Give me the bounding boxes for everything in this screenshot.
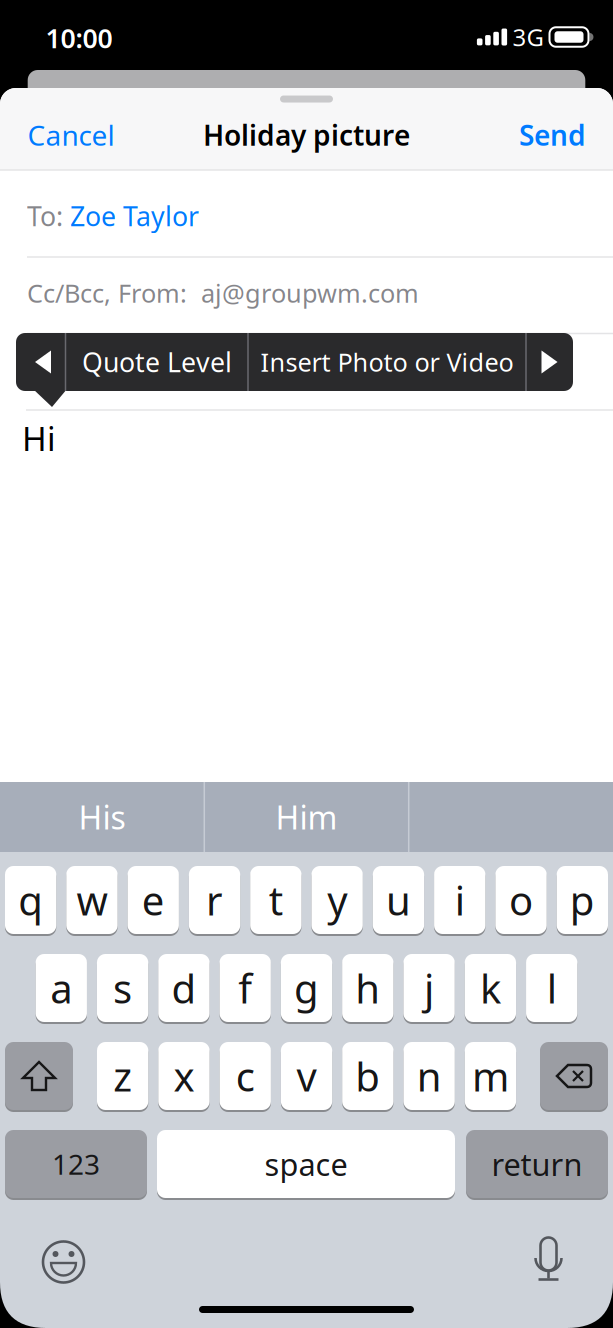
staticText: j bbox=[424, 961, 434, 1014]
staticText: r bbox=[206, 873, 223, 926]
button[interactable]: More menu items bbox=[541, 350, 557, 373]
staticText: t bbox=[269, 873, 283, 926]
button[interactable]: Insert Photo or Video bbox=[248, 333, 526, 391]
staticText: q bbox=[18, 873, 43, 926]
button[interactable]: To: bbox=[0, 173, 613, 259]
staticText: 3G bbox=[512, 21, 543, 53]
button[interactable]: Shift bbox=[5, 1041, 73, 1111]
button[interactable]: i bbox=[434, 865, 485, 935]
button[interactable]: space bbox=[157, 1129, 455, 1199]
staticText: i bbox=[455, 873, 465, 926]
staticText: His bbox=[78, 796, 125, 838]
button[interactable]: His bbox=[2, 782, 202, 852]
staticText: p bbox=[570, 873, 595, 926]
staticText: Quote Level bbox=[82, 344, 232, 380]
staticText: To: bbox=[27, 198, 63, 234]
staticText: o bbox=[509, 873, 533, 926]
staticText: space bbox=[264, 1144, 347, 1184]
staticText: k bbox=[480, 961, 501, 1014]
staticText: e bbox=[142, 873, 165, 926]
staticText: b bbox=[355, 1049, 380, 1102]
button[interactable]: Cancel bbox=[27, 116, 114, 154]
button[interactable]: y bbox=[311, 865, 363, 935]
button[interactable]: g bbox=[281, 953, 332, 1023]
button[interactable]: a bbox=[36, 953, 87, 1023]
button[interactable]: n bbox=[403, 1041, 455, 1111]
button[interactable]: w bbox=[66, 865, 118, 935]
button[interactable]: Quote Level bbox=[66, 333, 248, 391]
staticText: h bbox=[355, 961, 380, 1014]
staticText: y bbox=[327, 873, 347, 926]
button[interactable]: q bbox=[5, 865, 56, 935]
staticText: Zoe Taylor bbox=[70, 198, 199, 234]
button[interactable]: Delete bbox=[540, 1041, 608, 1111]
button[interactable]: c bbox=[220, 1041, 271, 1111]
staticText: l bbox=[547, 961, 557, 1014]
staticText: Cc/Bcc, From: aj@groupwm.com bbox=[27, 276, 419, 310]
button[interactable]: u bbox=[373, 865, 424, 935]
button[interactable]: m bbox=[465, 1041, 516, 1111]
staticText: Holiday picture bbox=[203, 116, 410, 154]
staticText: Cancel bbox=[27, 116, 114, 154]
staticText: return bbox=[491, 1144, 582, 1184]
button[interactable]: f bbox=[219, 953, 271, 1023]
staticText: Him bbox=[275, 796, 337, 838]
button[interactable]: e bbox=[128, 865, 179, 935]
button[interactable]: z bbox=[97, 1041, 148, 1111]
staticText: f bbox=[238, 961, 252, 1014]
button[interactable]: Dictation bbox=[528, 1240, 568, 1284]
staticText: d bbox=[171, 961, 196, 1014]
staticText: x bbox=[173, 1049, 194, 1102]
button[interactable]: Emoji bbox=[41, 1240, 85, 1284]
button[interactable]: Send bbox=[519, 116, 586, 154]
button[interactable]: h bbox=[342, 953, 393, 1023]
button[interactable]: 123 bbox=[5, 1129, 147, 1199]
button[interactable]: x bbox=[158, 1041, 210, 1111]
button[interactable]: Cc/Bcc, From: aj@groupwm.com bbox=[0, 257, 613, 329]
button[interactable]: r bbox=[189, 865, 240, 935]
staticText: Send bbox=[519, 116, 586, 154]
staticText: z bbox=[113, 1049, 132, 1102]
button[interactable]: t bbox=[250, 865, 301, 935]
staticText: g bbox=[294, 961, 319, 1014]
button[interactable]: l bbox=[526, 953, 577, 1023]
staticText: Insert Photo or Video bbox=[260, 345, 513, 379]
staticText: w bbox=[76, 873, 107, 926]
button[interactable]: j bbox=[403, 953, 455, 1023]
button[interactable]: s bbox=[97, 953, 148, 1023]
button[interactable]: k bbox=[465, 953, 516, 1023]
staticText: Hi bbox=[22, 416, 56, 460]
button[interactable]: return bbox=[466, 1129, 608, 1199]
staticText: m bbox=[472, 1049, 509, 1102]
staticText: u bbox=[386, 873, 411, 926]
staticText: v bbox=[296, 1049, 316, 1102]
staticText: 123 bbox=[52, 1145, 100, 1183]
button[interactable]: o bbox=[495, 865, 547, 935]
button[interactable]: v bbox=[281, 1041, 332, 1111]
staticText: c bbox=[236, 1049, 255, 1102]
button[interactable]: d bbox=[158, 953, 209, 1023]
button[interactable]: Him bbox=[206, 782, 406, 852]
staticText: s bbox=[113, 961, 132, 1014]
staticText: 10:00 bbox=[45, 20, 112, 56]
button[interactable]: Previous menu items bbox=[35, 350, 51, 373]
staticText: a bbox=[50, 961, 72, 1014]
staticText: n bbox=[417, 1049, 442, 1102]
button[interactable]: p bbox=[557, 865, 608, 935]
button[interactable]: b bbox=[342, 1041, 393, 1111]
